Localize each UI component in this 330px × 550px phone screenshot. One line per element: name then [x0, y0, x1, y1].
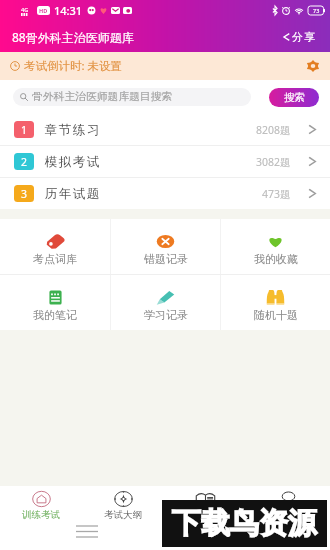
staticText: 模拟考试 — [44, 154, 100, 170]
button[interactable]: 2 — [0, 146, 330, 177]
button[interactable]: 考试大纲 — [82, 491, 164, 521]
staticText: 73 — [313, 7, 320, 14]
button[interactable]: 错题记录 — [111, 219, 220, 274]
staticText: 1 — [21, 123, 28, 137]
staticText: 历年试题 — [44, 186, 100, 202]
button[interactable]: 搜索 — [269, 88, 319, 107]
staticText: 3082题 — [256, 155, 291, 169]
button[interactable]: 我的 — [247, 491, 330, 521]
button[interactable]: 学习记录 — [111, 275, 220, 330]
staticText: 下载鸟资源 — [172, 505, 317, 542]
button[interactable]: 我的笔记 — [0, 275, 110, 330]
staticText: 搜索 — [284, 91, 305, 104]
button[interactable]: 我的收藏 — [221, 219, 330, 274]
button[interactable]: 题库资料 — [164, 491, 247, 521]
staticText: HD — [39, 7, 48, 14]
staticText: 考试倒计时: 未设置 — [24, 58, 123, 74]
staticText: 训练考试 — [22, 509, 60, 521]
staticText: 14:31 — [54, 3, 83, 18]
button[interactable]: 训练考试 — [0, 491, 82, 521]
button[interactable]: 考点词库 — [0, 219, 110, 274]
staticText: 分享 — [292, 30, 317, 44]
staticText: 2 — [21, 155, 28, 169]
button[interactable]: Settings — [305, 58, 321, 74]
staticText: 考试大纲 — [104, 509, 142, 521]
staticText: 题库资料 — [187, 509, 225, 521]
button[interactable]: 骨外科主治医师题库题目搜索 — [13, 88, 251, 106]
staticText: 88骨外科主治医师题库 — [12, 29, 134, 45]
staticText: 我的笔记 — [33, 308, 77, 322]
staticText: 考点词库 — [33, 252, 77, 266]
staticText: 骨外科主治医师题库题目搜索 — [32, 90, 173, 104]
staticText: 3 — [21, 187, 28, 201]
staticText: 错题记录 — [144, 252, 188, 266]
staticText: 随机十题 — [254, 308, 298, 322]
button[interactable]: 随机十题 — [221, 275, 330, 330]
button[interactable]: 3 — [0, 178, 330, 209]
staticText: 学习记录 — [144, 308, 188, 322]
staticText: 我的 — [279, 509, 298, 521]
staticText: 4G — [21, 6, 29, 13]
button[interactable]: 分享 — [281, 26, 319, 48]
staticText: 我的收藏 — [254, 252, 298, 266]
staticText: 章节练习 — [44, 122, 100, 138]
button[interactable]: 1 — [0, 114, 330, 145]
staticText: 8208题 — [256, 123, 291, 137]
staticText: 473题 — [262, 187, 291, 201]
